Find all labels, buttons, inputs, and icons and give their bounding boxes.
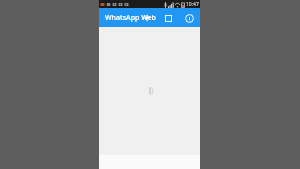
button[interactable]: Scan QR code bbox=[160, 10, 176, 26]
staticText: WhatsApp Web bbox=[105, 13, 156, 23]
button[interactable]: Info bbox=[181, 10, 197, 26]
staticText: 10:47 bbox=[186, 1, 199, 8]
button[interactable]: Add bbox=[139, 10, 155, 26]
